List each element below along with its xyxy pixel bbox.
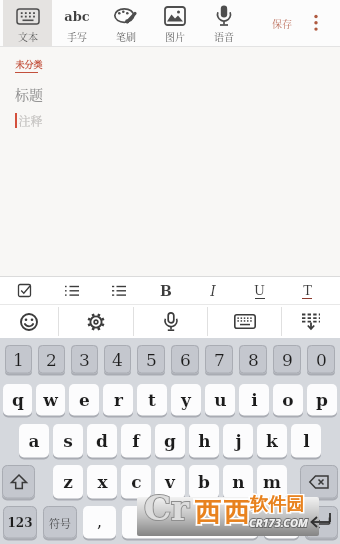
button[interactable]: 8: [239, 345, 267, 374]
staticText: 笔刷: [116, 29, 136, 43]
staticText: p: [316, 390, 328, 410]
staticText: 软件园: [250, 493, 304, 516]
button[interactable]: 4: [104, 345, 131, 374]
button[interactable]: n: [223, 465, 253, 499]
button[interactable]: s: [53, 424, 83, 458]
staticText: l: [303, 431, 310, 451]
staticText: Cr: [144, 488, 189, 528]
staticText: 西西: [193, 496, 251, 529]
button[interactable]: g: [155, 424, 185, 458]
button[interactable]: x: [87, 465, 117, 499]
button[interactable]: 2: [38, 345, 65, 374]
staticText: 注释: [18, 112, 43, 129]
button[interactable]: q: [3, 384, 32, 416]
staticText: d: [96, 431, 108, 451]
button[interactable]: U: [236, 277, 283, 304]
button[interactable]: p: [307, 384, 337, 416]
button[interactable]: r: [103, 384, 133, 416]
button[interactable]: I: [189, 277, 236, 304]
staticText: x: [97, 472, 108, 492]
button[interactable]: b: [189, 465, 219, 499]
button[interactable]: 笔刷: [101, 0, 150, 46]
staticText: w: [43, 390, 58, 410]
staticText: z: [63, 472, 73, 492]
button[interactable]: 5: [137, 345, 165, 374]
button[interactable]: [59, 305, 133, 338]
button[interactable]: 9: [273, 345, 301, 374]
button[interactable]: 3: [71, 345, 98, 374]
staticText: T: [303, 283, 312, 298]
staticText: 图片: [165, 29, 185, 43]
button[interactable]: 文本: [3, 0, 52, 46]
staticText: c: [131, 472, 142, 492]
button[interactable]: z: [53, 465, 83, 499]
staticText: y: [181, 390, 191, 410]
button[interactable]: d: [87, 424, 117, 458]
staticText: CR173.COM: [249, 515, 308, 530]
button[interactable]: e: [69, 384, 99, 416]
staticText: 标题: [15, 84, 43, 104]
staticText: n: [232, 472, 245, 492]
button[interactable]: o: [273, 384, 303, 416]
staticText: b: [198, 472, 210, 492]
button[interactable]: T: [283, 277, 330, 304]
staticText: 3: [79, 350, 90, 370]
staticText: q: [12, 390, 24, 410]
button[interactable]: i: [239, 384, 269, 416]
staticText: j: [235, 431, 242, 451]
button[interactable]: c: [121, 465, 151, 499]
button[interactable]: m: [257, 465, 287, 499]
button[interactable]: [0, 277, 48, 304]
button[interactable]: y: [171, 384, 201, 416]
staticText: U: [254, 283, 265, 298]
button[interactable]: [282, 305, 340, 338]
staticText: 4: [112, 350, 123, 370]
button[interactable]: 6: [171, 345, 199, 374]
button[interactable]: 7: [205, 345, 233, 374]
staticText: I: [210, 283, 216, 299]
staticText: B: [160, 283, 172, 299]
button[interactable]: u: [205, 384, 235, 416]
button[interactable]: ,: [83, 506, 116, 539]
button[interactable]: 语音: [199, 0, 248, 46]
button[interactable]: [264, 506, 299, 539]
button[interactable]: [305, 506, 338, 539]
button[interactable]: [308, 11, 324, 35]
button[interactable]: abc: [52, 0, 101, 46]
button[interactable]: [122, 506, 258, 539]
button[interactable]: [48, 277, 95, 304]
button[interactable]: 未分类: [15, 58, 43, 73]
button[interactable]: j: [223, 424, 253, 458]
staticText: o: [282, 390, 294, 410]
button[interactable]: 0: [307, 345, 335, 374]
staticText: f: [132, 431, 140, 451]
staticText: 5: [146, 350, 157, 370]
button[interactable]: [134, 305, 207, 338]
button[interactable]: B: [142, 277, 189, 304]
staticText: h: [198, 431, 211, 451]
button[interactable]: w: [36, 384, 65, 416]
button[interactable]: k: [257, 424, 287, 458]
staticText: Cr: [144, 488, 189, 528]
button[interactable]: v: [155, 465, 185, 499]
button[interactable]: a: [19, 424, 49, 458]
button[interactable]: [2, 465, 35, 499]
staticText: r: [114, 390, 123, 410]
button[interactable]: l: [291, 424, 321, 458]
staticText: e: [79, 390, 90, 410]
staticText: ,: [97, 516, 102, 530]
button[interactable]: 保存: [272, 16, 292, 30]
button[interactable]: [300, 465, 338, 499]
button[interactable]: f: [121, 424, 151, 458]
staticText: t: [148, 390, 156, 410]
button[interactable]: h: [189, 424, 219, 458]
button[interactable]: 1: [5, 345, 32, 374]
button[interactable]: [0, 305, 58, 338]
button[interactable]: [208, 305, 281, 338]
button[interactable]: 123: [3, 506, 37, 539]
button[interactable]: 图片: [150, 0, 199, 46]
button[interactable]: [95, 277, 142, 304]
button[interactable]: t: [137, 384, 167, 416]
button[interactable]: 符号: [43, 506, 77, 539]
staticText: 语音: [214, 29, 234, 43]
